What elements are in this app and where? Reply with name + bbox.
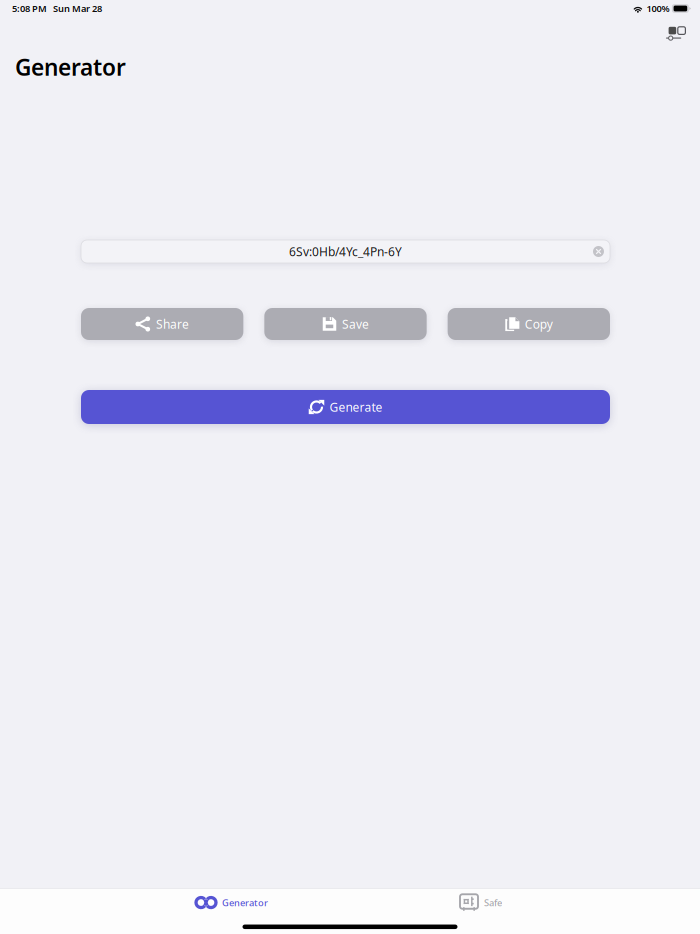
button[interactable]: Share [81, 308, 243, 340]
staticText: Generator [15, 52, 126, 82]
staticText: Sun Mar 28 [53, 2, 102, 15]
button[interactable]: Generator [194, 889, 268, 917]
button[interactable]: Generate [81, 390, 610, 424]
staticText: 6Sv:0Hb/4Yc_4Pn-6Y [289, 243, 402, 259]
button[interactable]: Multitasking Controls [662, 24, 692, 46]
staticText: Copy [525, 316, 553, 332]
staticText: 5:08 PM [12, 2, 47, 15]
staticText: Share [156, 316, 189, 332]
button[interactable]: Copy [448, 308, 610, 340]
staticText: 100% [646, 2, 669, 15]
button[interactable]: Save [264, 308, 427, 340]
staticText: Generate [329, 399, 382, 415]
staticText: Safe [484, 896, 502, 909]
button[interactable]: Clear text [591, 244, 606, 259]
button[interactable]: Safe [460, 889, 502, 917]
staticText: Generator [222, 896, 268, 909]
staticText: Save [342, 316, 369, 332]
